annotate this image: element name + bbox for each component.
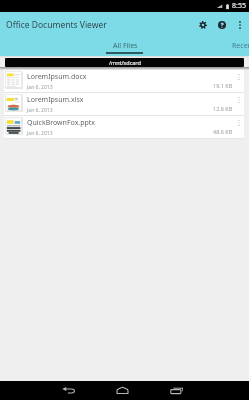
- button[interactable]: Help: [213, 12, 231, 38]
- staticText: Jan 6, 2013: [27, 107, 53, 114]
- button[interactable]: Settings: [194, 12, 212, 38]
- button[interactable]: QuickBrownFox.pptx: [4, 116, 244, 138]
- staticText: /mnt/sdcard: [109, 59, 141, 66]
- staticText: LoremIpsum.docx: [27, 72, 87, 82]
- button[interactable]: More options: [233, 93, 244, 115]
- button[interactable]: More options: [233, 70, 244, 92]
- staticText: Jan 6, 2013: [27, 130, 53, 137]
- staticText: All Files: [113, 41, 138, 51]
- button[interactable]: Recents: [156, 381, 197, 400]
- staticText: 19.1 KB: [213, 82, 233, 89]
- button[interactable]: More options: [233, 116, 244, 138]
- staticText: 8:55: [232, 1, 246, 11]
- staticText: LoremIpsum.xlsx: [27, 95, 84, 105]
- button[interactable]: All Files: [106, 38, 144, 56]
- staticText: Jan 6, 2013: [27, 84, 53, 91]
- staticText: Recent: [232, 41, 249, 51]
- button[interactable]: Recent: [224, 38, 249, 56]
- button[interactable]: LoremIpsum.xlsx: [4, 93, 244, 115]
- staticText: 48.6 KB: [213, 128, 233, 135]
- staticText: 12.6 KB: [213, 105, 233, 112]
- button[interactable]: Home: [102, 381, 143, 400]
- staticText: Office Documents Viewer: [6, 19, 107, 31]
- button[interactable]: LoremIpsum.docx: [4, 70, 244, 92]
- button[interactable]: /mnt/sdcard: [5, 58, 244, 67]
- button[interactable]: Back: [48, 381, 89, 400]
- button[interactable]: More options: [232, 12, 248, 38]
- staticText: QuickBrownFox.pptx: [27, 118, 96, 128]
